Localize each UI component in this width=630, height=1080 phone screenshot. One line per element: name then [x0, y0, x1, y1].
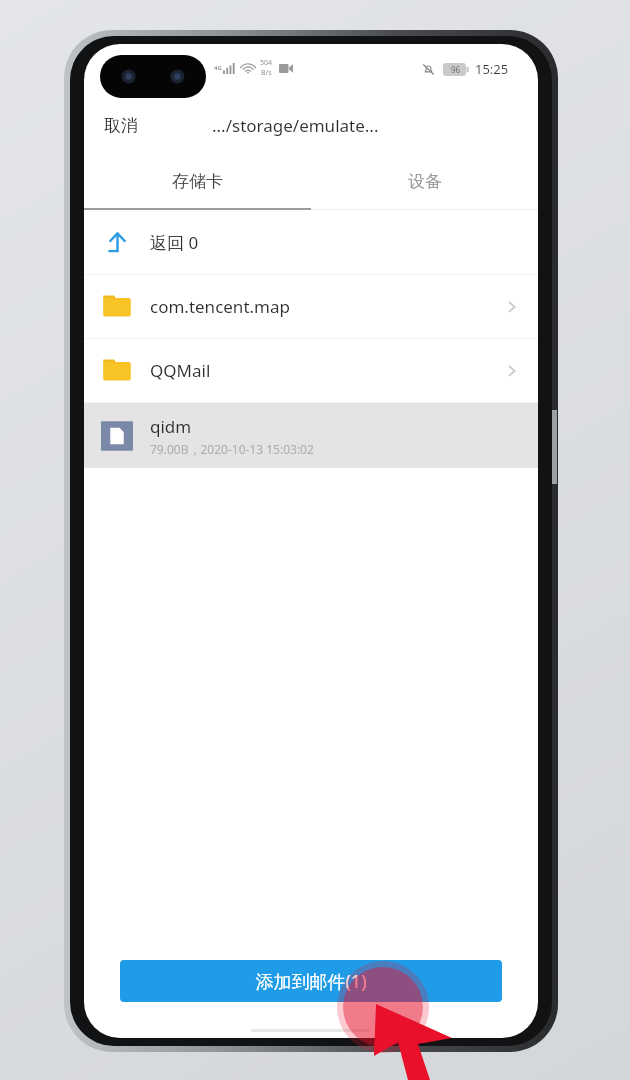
staticText: B/s	[261, 68, 272, 78]
button[interactable]: 取消	[84, 107, 154, 144]
staticText: 15:25	[475, 60, 509, 78]
button[interactable]: 存储卡	[84, 152, 311, 210]
button[interactable]: 添加到邮件(1)	[120, 960, 502, 1002]
staticText: QQMail	[150, 359, 211, 382]
staticText: 4G	[214, 64, 222, 72]
staticText: com.tencent.map	[150, 295, 290, 318]
button[interactable]: 设备	[311, 152, 538, 210]
button[interactable]: com.tencent.map	[84, 275, 538, 338]
staticText: 存储卡	[172, 171, 223, 192]
staticText: 返回 0	[150, 231, 199, 254]
staticText: 设备	[408, 171, 442, 192]
staticText: 添加到邮件(1)	[255, 969, 367, 994]
staticText: .../storage/emulate...	[212, 114, 379, 137]
staticText: 79.00B，2020-10-13 15:03:02	[150, 441, 314, 457]
button[interactable]: 返回 0	[84, 210, 538, 274]
button[interactable]: QQMail	[84, 339, 538, 402]
staticText: 取消	[104, 115, 138, 136]
staticText: qidm	[150, 415, 192, 438]
staticText: 96	[451, 64, 461, 75]
staticText: 504	[260, 58, 273, 68]
button[interactable]: qidm	[84, 403, 538, 468]
